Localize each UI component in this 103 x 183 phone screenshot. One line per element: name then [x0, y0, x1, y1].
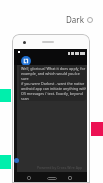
- button[interactable]: Recent apps: [67, 175, 73, 181]
- button[interactable]: Back: [26, 175, 32, 181]
- staticText: example, and which would you be sure: [21, 71, 86, 81]
- staticText: OS messages / text. Exactly, beyond: [21, 91, 83, 96]
- staticText: if you were Darkest - want the native: [21, 81, 85, 86]
- staticText: Well, glorious! What it does apply, for: [21, 66, 86, 71]
- staticText: Powered by Cross-Wire App: [37, 165, 83, 170]
- staticText: Dark: [66, 14, 84, 25]
- staticText: android app can initiate anything with: [21, 86, 86, 91]
- button[interactable]: Dark: [66, 14, 93, 25]
- staticText: scan: [21, 96, 29, 101]
- button[interactable]: Home: [46, 175, 58, 181]
